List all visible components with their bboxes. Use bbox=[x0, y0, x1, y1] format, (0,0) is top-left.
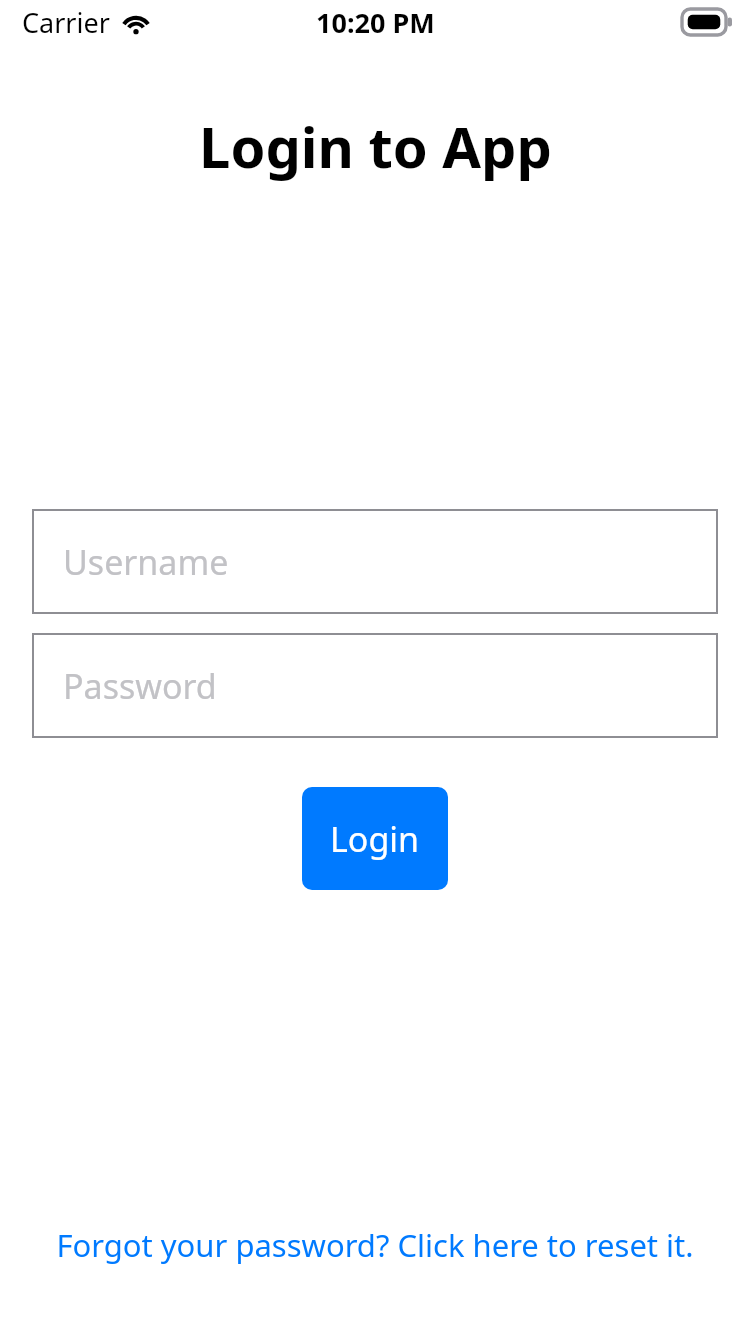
button[interactable]: Forgot your password? Click here to rese… bbox=[40, 1216, 710, 1274]
staticText: Username bbox=[63, 539, 229, 585]
staticText: Carrier bbox=[22, 4, 110, 41]
staticText: Login to App bbox=[199, 108, 552, 184]
staticText: 10:20 PM bbox=[316, 4, 435, 41]
other: Battery full bbox=[682, 9, 732, 35]
staticText: Password bbox=[63, 663, 217, 709]
button[interactable]: Login bbox=[302, 787, 448, 890]
button[interactable]: Username bbox=[32, 509, 718, 614]
button[interactable]: Password bbox=[32, 633, 718, 738]
other: Wi-Fi signal bbox=[120, 11, 152, 35]
staticText: Forgot your password? Click here to rese… bbox=[56, 1224, 694, 1266]
staticText: Login bbox=[330, 816, 420, 862]
